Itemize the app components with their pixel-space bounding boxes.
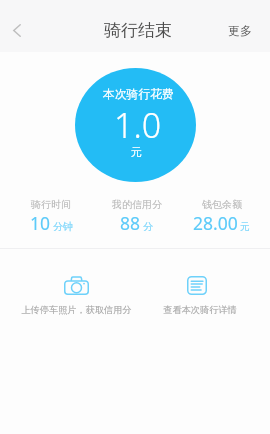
staticText: 1.0 xyxy=(114,102,162,148)
button[interactable]: 骑行时间 xyxy=(8,198,94,235)
staticText: 骑行时间 xyxy=(31,198,71,211)
staticText: 元 xyxy=(131,145,142,159)
staticText: 查看本次骑行详情 xyxy=(163,304,237,316)
staticText: 元 xyxy=(240,221,250,233)
staticText: 88 xyxy=(120,211,141,235)
button[interactable]: 更多 xyxy=(210,9,270,52)
staticText: 28.00 xyxy=(193,211,238,235)
button[interactable]: 上传停车照片，获取信用分 xyxy=(14,276,138,316)
staticText: 分 xyxy=(143,221,153,233)
button[interactable]: Back xyxy=(0,9,44,52)
staticText: 分钟 xyxy=(53,221,73,233)
button[interactable]: 钱包余额 xyxy=(179,198,264,235)
staticText: 我的信用分 xyxy=(112,198,162,211)
staticText: 上传停车照片，获取信用分 xyxy=(21,304,132,316)
button[interactable]: 我的信用分 xyxy=(94,198,179,235)
staticText: 10 xyxy=(30,211,51,235)
button[interactable]: 查看本次骑行详情 xyxy=(138,276,262,316)
staticText: 骑行结束 xyxy=(104,20,172,41)
staticText: 更多 xyxy=(228,23,252,38)
button[interactable]: 本次骑行花费 xyxy=(75,68,196,182)
staticText: 钱包余额 xyxy=(202,198,242,211)
staticText: 本次骑行花费 xyxy=(103,87,174,102)
